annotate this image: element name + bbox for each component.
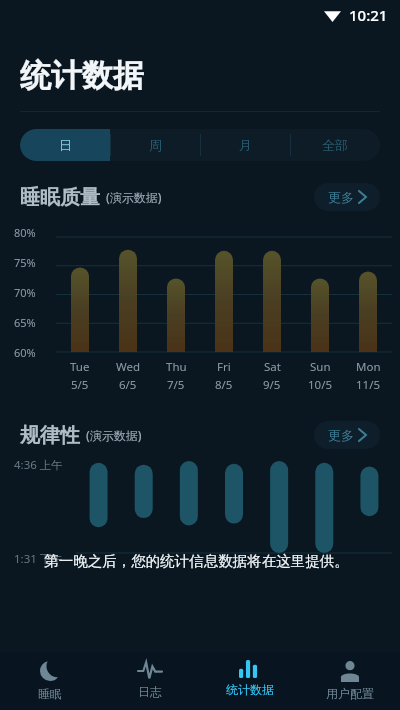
staticText: Wed <box>116 359 141 375</box>
staticText: 统计数据 <box>20 56 144 95</box>
staticText: Sat <box>264 359 281 375</box>
staticText: 11/5 <box>356 377 381 393</box>
staticText: Thu <box>166 359 187 375</box>
button[interactable]: 用户配置 <box>300 652 400 710</box>
staticText: 1:31 下午 <box>14 551 63 567</box>
staticText: 全部 <box>322 137 348 153</box>
staticText: 4:36 上午 <box>14 457 63 473</box>
staticText: 70% <box>14 285 36 300</box>
staticText: Tue <box>70 359 90 375</box>
button[interactable]: 全部 <box>290 129 380 161</box>
staticText: (演示数据) <box>86 427 142 443</box>
button[interactable]: 周 <box>110 129 200 161</box>
button[interactable]: 统计数据 <box>200 652 300 710</box>
button[interactable]: 日 <box>20 129 110 161</box>
staticText: 第一晚之后，您的统计信息数据将在这里提供。 <box>44 552 349 570</box>
button[interactable]: 睡眠 <box>0 652 100 710</box>
button[interactable]: 更多 <box>314 421 380 449</box>
staticText: 75% <box>14 255 36 270</box>
staticText: 9/5 <box>263 377 281 393</box>
staticText: 80% <box>14 225 36 240</box>
staticText: Sun <box>310 359 331 375</box>
staticText: 规律性 <box>20 423 80 448</box>
staticText: (演示数据) <box>106 189 162 205</box>
staticText: 更多 <box>328 189 354 205</box>
staticText: Fri <box>217 359 231 375</box>
staticText: 更多 <box>328 427 354 443</box>
staticText: 月 <box>239 137 252 153</box>
staticText: 日 <box>59 137 72 153</box>
button[interactable]: 月 <box>200 129 290 161</box>
staticText: 6/5 <box>119 377 137 393</box>
staticText: 周 <box>149 137 162 153</box>
staticText: 10:21 <box>349 5 388 25</box>
staticText: 睡眠质量 <box>20 185 100 210</box>
staticText: 睡眠 <box>38 686 62 701</box>
staticText: 统计数据 <box>226 682 274 697</box>
button[interactable]: 更多 <box>314 183 380 211</box>
staticText: Mon <box>356 359 381 375</box>
staticText: 日志 <box>138 684 162 699</box>
staticText: 65% <box>14 315 36 330</box>
staticText: 8/5 <box>215 377 233 393</box>
staticText: 7/5 <box>167 377 185 393</box>
staticText: 用户配置 <box>326 686 374 701</box>
staticText: 5/5 <box>71 377 89 393</box>
staticText: 60% <box>14 345 36 360</box>
button[interactable]: 日志 <box>100 652 200 710</box>
staticText: 10/5 <box>308 377 333 393</box>
